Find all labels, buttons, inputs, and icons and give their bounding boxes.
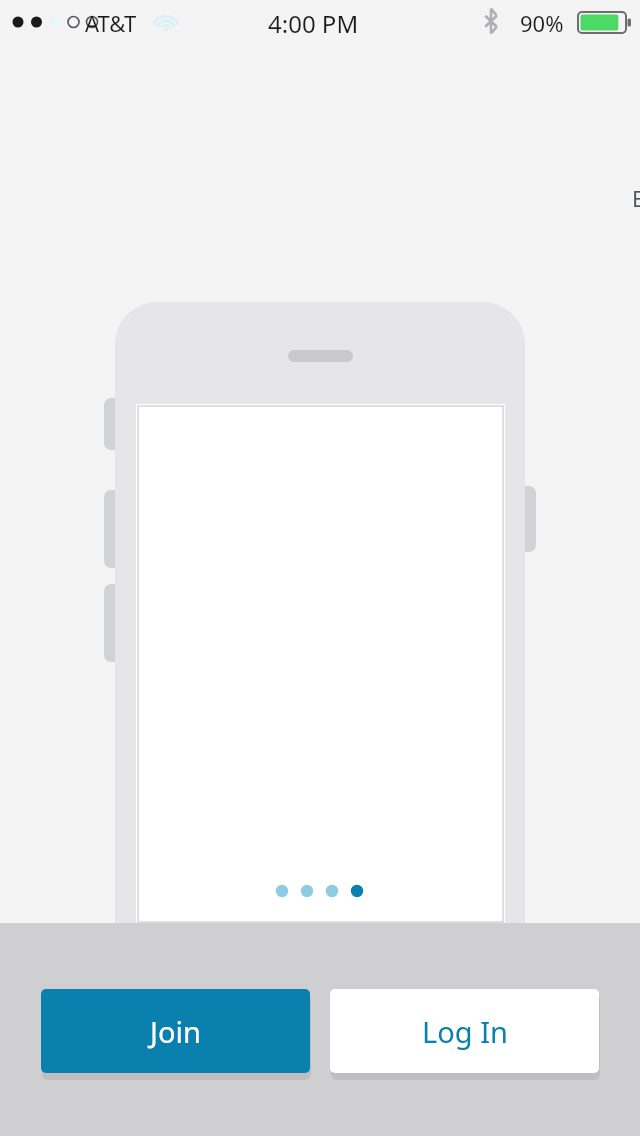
staticText: 4:00 PM — [268, 7, 359, 40]
staticText: Log In — [422, 1012, 508, 1051]
staticText: AT&T — [85, 8, 137, 38]
staticText: E — [632, 183, 640, 213]
button[interactable]: Join — [41, 989, 310, 1073]
staticText: 90% — [520, 8, 564, 38]
button[interactable]: Log In — [330, 989, 599, 1073]
staticText: Join — [150, 1012, 201, 1051]
